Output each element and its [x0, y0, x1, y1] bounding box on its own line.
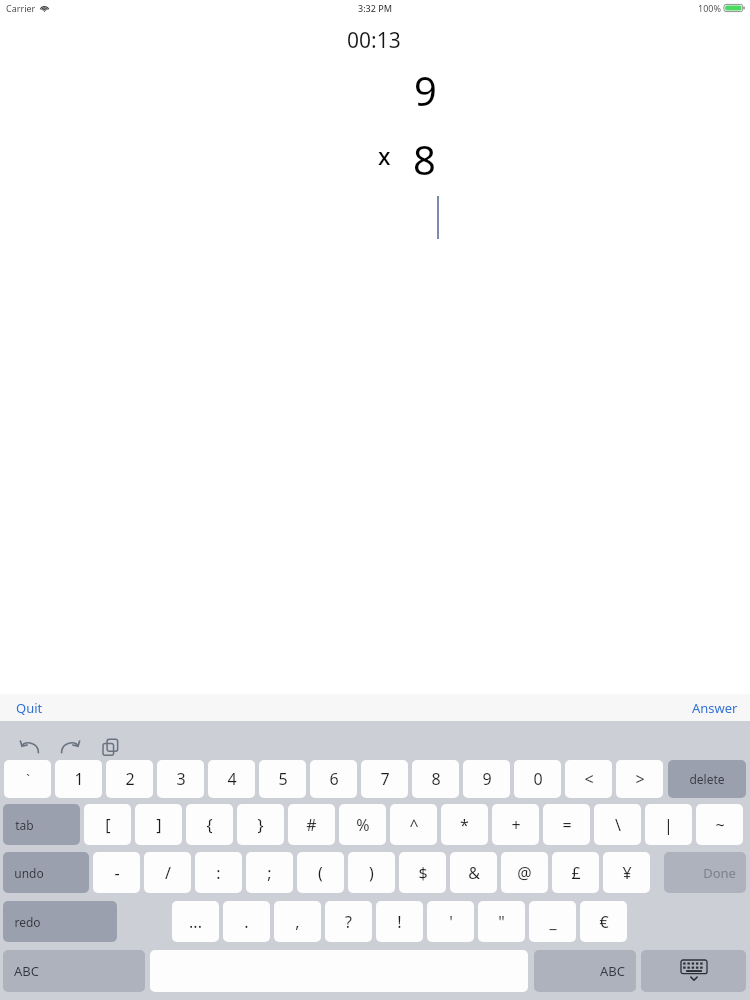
staticText: ` [26, 770, 30, 788]
button[interactable]: € [580, 901, 627, 942]
button[interactable]: ` [4, 760, 51, 798]
button[interactable]: [ [84, 804, 131, 845]
button[interactable]: 0 [514, 760, 561, 798]
staticText: Quit [16, 699, 43, 716]
button[interactable]: ... [172, 901, 219, 942]
button[interactable]: 5 [259, 760, 306, 798]
staticText: 1 [74, 768, 84, 790]
staticText: < [584, 768, 594, 790]
button[interactable]: tab [3, 804, 80, 845]
button[interactable]: # [288, 804, 335, 845]
button[interactable]: 2 [106, 760, 153, 798]
button[interactable]: ' [427, 901, 474, 942]
button[interactable]: { [186, 804, 233, 845]
staticText: 3 [176, 768, 186, 790]
button[interactable]: 1 [55, 760, 102, 798]
button[interactable]: Undo [12, 729, 48, 765]
button[interactable]: 9 [463, 760, 510, 798]
button[interactable]: 3 [157, 760, 204, 798]
button[interactable]: @ [501, 852, 548, 893]
staticText: 8 [413, 132, 436, 186]
button[interactable]: : [195, 852, 242, 893]
staticText: @ [517, 862, 532, 884]
button[interactable]: delete [668, 760, 746, 798]
staticText: ] [156, 814, 162, 836]
staticText: _ [549, 911, 557, 933]
button[interactable]: = [543, 804, 590, 845]
staticText: tab [15, 817, 34, 833]
button[interactable]: ] [135, 804, 182, 845]
staticText: & [468, 862, 480, 884]
staticText: delete [689, 771, 725, 787]
button[interactable]: 4 [208, 760, 255, 798]
button[interactable]: Redo [52, 729, 88, 765]
staticText: = [562, 814, 572, 836]
staticText: ABC [14, 962, 39, 980]
button[interactable]: % [339, 804, 386, 845]
staticText: - [114, 862, 120, 884]
staticText: £ [571, 862, 581, 884]
button[interactable]: ( [297, 852, 344, 893]
button[interactable]: Quit [0, 694, 59, 721]
staticText: x [378, 140, 391, 171]
button[interactable]: Hide keyboard [641, 950, 746, 992]
staticText: ) [369, 862, 374, 884]
button[interactable]: " [478, 901, 525, 942]
button[interactable]: undo [3, 852, 89, 893]
staticText: / [165, 862, 171, 884]
staticText: . [244, 911, 249, 933]
staticText: ¥ [622, 862, 632, 884]
button[interactable]: redo [3, 901, 117, 942]
button[interactable]: > [616, 760, 663, 798]
button[interactable]: 7 [361, 760, 408, 798]
staticText: + [511, 814, 521, 836]
button[interactable]: ) [348, 852, 395, 893]
staticText: 0 [533, 768, 543, 790]
button[interactable]: * [441, 804, 488, 845]
button[interactable]: ABC [3, 950, 145, 992]
button[interactable]: £ [552, 852, 599, 893]
button[interactable]: \ [594, 804, 641, 845]
button[interactable]: Done [664, 852, 746, 893]
button[interactable]: ^ [390, 804, 437, 845]
staticText: ABC [600, 962, 625, 980]
staticText: 4 [227, 768, 237, 790]
staticText: Carrier [6, 2, 36, 14]
button[interactable]: , [274, 901, 321, 942]
button[interactable]: | [645, 804, 692, 845]
staticText: ^ [409, 814, 419, 836]
button[interactable]: } [237, 804, 284, 845]
staticText: } [257, 814, 264, 836]
button[interactable]: 6 [310, 760, 357, 798]
staticText: 8 [431, 768, 441, 790]
staticText: \ [615, 814, 621, 836]
staticText: 7 [380, 768, 390, 790]
button[interactable]: < [565, 760, 612, 798]
staticText: 3:32 PM [358, 2, 392, 14]
staticText: " [498, 911, 505, 933]
staticText: , [295, 911, 300, 933]
button[interactable]: _ [529, 901, 576, 942]
button[interactable]: Answer [680, 694, 750, 721]
button[interactable]: 8 [412, 760, 459, 798]
button[interactable]: ¥ [603, 852, 650, 893]
button[interactable]: ~ [696, 804, 743, 845]
staticText: % [356, 814, 370, 836]
button[interactable]: ABC [534, 950, 636, 992]
button[interactable]: Paste [92, 729, 128, 765]
button[interactable]: ! [376, 901, 423, 942]
staticText: 100% [698, 2, 721, 14]
staticText: 00:13 [347, 26, 401, 55]
button[interactable]: ? [325, 901, 372, 942]
staticText: Done [703, 864, 736, 882]
button[interactable]: . [223, 901, 270, 942]
button[interactable]: - [93, 852, 140, 893]
staticText: ~ [715, 814, 725, 836]
button[interactable]: + [492, 804, 539, 845]
button[interactable]: / [144, 852, 191, 893]
staticText: 5 [278, 768, 288, 790]
button[interactable]: $ [399, 852, 446, 893]
button[interactable]: & [450, 852, 497, 893]
button[interactable]: ; [246, 852, 293, 893]
